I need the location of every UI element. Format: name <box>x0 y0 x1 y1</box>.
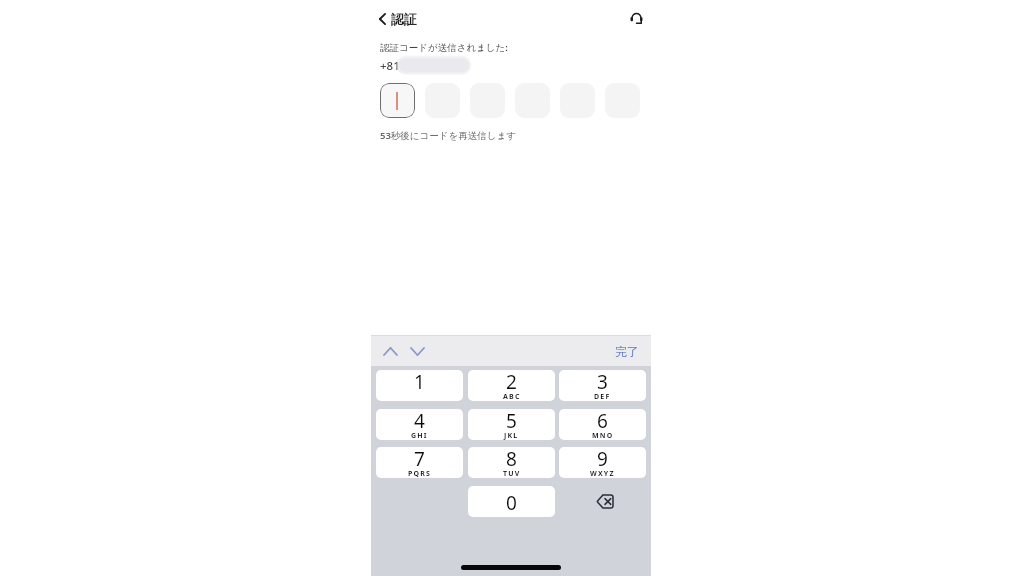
button[interactable]: Next field <box>404 340 436 363</box>
staticText: MNO <box>592 431 614 440</box>
button[interactable] <box>380 83 415 118</box>
button[interactable]: 2 <box>468 370 555 401</box>
staticText: GHI <box>411 431 428 440</box>
button[interactable]: 4 <box>376 409 463 440</box>
button[interactable]: Previous field <box>371 340 404 363</box>
staticText: 認証コードが送信されました: <box>380 41 508 54</box>
button[interactable]: Backspace <box>559 486 646 517</box>
staticText: 7 <box>414 447 425 472</box>
staticText: 5 <box>506 409 517 434</box>
staticText: 8 <box>506 447 517 472</box>
button[interactable]: 6 <box>559 409 646 440</box>
staticText: 9 <box>597 447 608 472</box>
staticText: 2 <box>506 370 517 395</box>
staticText: 6 <box>597 409 608 434</box>
staticText: 0 <box>506 490 517 516</box>
button[interactable]: 9 <box>559 447 646 478</box>
button[interactable]: 0 <box>468 486 555 517</box>
button[interactable]: 7 <box>376 447 463 478</box>
staticText: 完了 <box>615 344 639 359</box>
staticText: TUV <box>503 469 521 478</box>
staticText: +81 <box>380 58 400 74</box>
staticText: 3 <box>597 370 608 395</box>
staticText: WXYZ <box>590 469 615 478</box>
staticText: PQRS <box>408 469 432 478</box>
button[interactable]: 1 <box>376 370 463 401</box>
button[interactable]: 8 <box>468 447 555 478</box>
button[interactable]: 5 <box>468 409 555 440</box>
staticText: DEF <box>594 392 611 401</box>
staticText: 1 <box>414 370 425 395</box>
button[interactable]: 53秒後にコードを再送信します <box>380 129 516 142</box>
button[interactable]: Customer support <box>620 6 651 31</box>
staticText: JKL <box>504 431 519 440</box>
staticText: 4 <box>414 409 425 434</box>
staticText: 認証 <box>391 11 417 27</box>
button[interactable]: 完了 <box>603 339 651 364</box>
staticText: ABC <box>503 392 521 401</box>
button[interactable]: 3 <box>559 370 646 401</box>
button[interactable]: 認証 <box>371 6 425 32</box>
